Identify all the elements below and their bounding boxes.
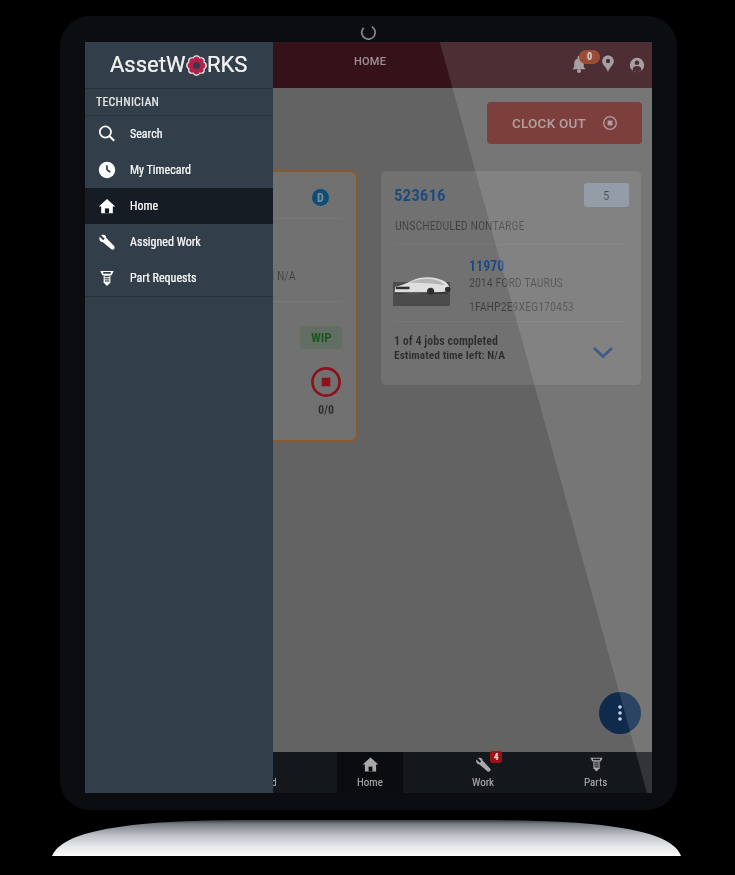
- button[interactable]: CLOCK OUT: [487, 102, 642, 144]
- staticText: HOME: [354, 55, 387, 68]
- staticText: Parts: [584, 776, 608, 789]
- staticText: Search: [130, 127, 163, 141]
- staticText: Work: [472, 776, 495, 789]
- button[interactable]: Home: [85, 188, 273, 224]
- staticText: 2014 FORD TAURUS: [469, 276, 563, 290]
- staticText: WIP: [311, 330, 332, 345]
- staticText: Estimated time left: N/A: [394, 348, 506, 361]
- staticText: 4: [494, 752, 499, 763]
- button[interactable]: Search: [85, 116, 273, 152]
- staticText: 0/0: [318, 403, 335, 417]
- staticText: Part Requests: [130, 271, 197, 285]
- button[interactable]: Account: [623, 51, 651, 79]
- button[interactable]: Parts: [539, 752, 652, 793]
- staticText: UNSCHEDULED: [111, 229, 184, 243]
- staticText: AssetW: [110, 52, 186, 78]
- button[interactable]: Expand: [587, 336, 619, 368]
- button[interactable]: More options: [599, 692, 641, 734]
- staticText: My Timecard: [130, 163, 192, 177]
- staticText: 0: [587, 51, 593, 63]
- staticText: Home: [357, 776, 383, 789]
- button[interactable]: Timecard: [199, 752, 313, 793]
- button[interactable]: Assigned Work: [85, 224, 273, 260]
- button[interactable]: Part Requests: [85, 260, 273, 296]
- staticText: RKS: [207, 52, 248, 78]
- button[interactable]: Notifications: [565, 51, 593, 79]
- staticText: 1FAHP2E9XEG170453: [469, 300, 574, 314]
- button[interactable]: Home: [313, 752, 426, 793]
- button[interactable]: My Timecard: [85, 152, 273, 188]
- staticText: 11970: [469, 258, 505, 274]
- button[interactable]: Stop timer: [311, 367, 341, 397]
- staticText: 1 of 4 jobs completed: [394, 334, 498, 348]
- staticText: UNSCHEDULED NONTARGE: [395, 219, 525, 233]
- staticText: Home: [130, 199, 159, 213]
- staticText: Timecard: [236, 776, 277, 789]
- staticText: 5: [603, 188, 610, 203]
- staticText: 523616: [394, 185, 446, 205]
- button[interactable]: Location: [594, 51, 622, 79]
- staticText: CLOCK OUT: [512, 115, 586, 131]
- staticText: TECHNICIAN: [96, 95, 160, 109]
- button[interactable]: 4: [426, 752, 539, 793]
- staticText: VIN N/A: [257, 269, 296, 283]
- staticText: Assigned Work: [130, 235, 201, 249]
- staticText: D: [317, 191, 324, 205]
- staticText: 468732: [111, 186, 163, 206]
